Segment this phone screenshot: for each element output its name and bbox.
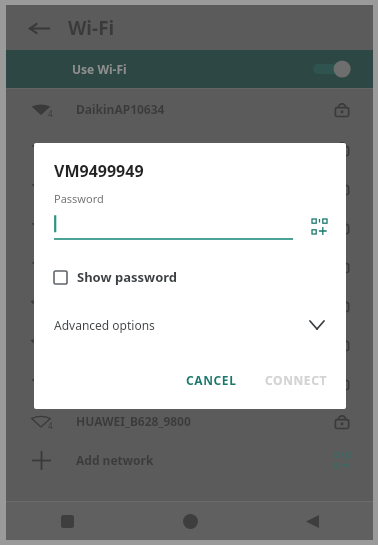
staticText: VM9499949 [54, 160, 144, 182]
staticText: Password [54, 191, 104, 206]
staticText: Use Wi-Fi [72, 61, 127, 77]
button[interactable]: Scan QR code [305, 212, 333, 240]
button[interactable]: 4 [6, 401, 373, 440]
staticText: 4 [48, 108, 53, 119]
staticText: Advanced options [54, 317, 155, 333]
button[interactable]: 4 [6, 89, 373, 128]
button[interactable]: 4 [6, 362, 373, 401]
button[interactable]: 4 [6, 128, 373, 167]
staticText: Show password [77, 268, 178, 286]
button[interactable]: 4 [6, 323, 373, 362]
button[interactable]: Back [251, 502, 373, 540]
button[interactable]: Back [24, 13, 54, 43]
staticText: 4 [48, 420, 53, 431]
button[interactable]: Show password [34, 264, 346, 290]
button[interactable]: Add network [6, 440, 373, 479]
staticText: CANCEL [186, 372, 237, 388]
staticText: CONNECT [265, 372, 328, 388]
staticText: DaikinAP10634 [76, 101, 165, 117]
button[interactable]: CONNECT [255, 365, 338, 395]
button[interactable]: Scan QR code to add network [331, 449, 353, 471]
button[interactable]: Recent apps [6, 502, 129, 540]
button[interactable]: 4 [6, 167, 373, 206]
button[interactable]: 4 [6, 284, 373, 323]
button[interactable]: 4 [6, 245, 373, 284]
button[interactable]: Use Wi-Fi [6, 50, 373, 88]
button[interactable]: Advanced options [34, 311, 346, 339]
button[interactable]: CANCEL [176, 365, 247, 395]
staticText: HUAWEI_B628_9800 [76, 413, 191, 429]
button[interactable]: 4 [6, 206, 373, 245]
button[interactable]: Home [129, 502, 251, 540]
button[interactable] [54, 212, 293, 240]
button[interactable]: Use Wi-Fi toggle [313, 56, 357, 82]
staticText: Wi-Fi [68, 15, 115, 41]
staticText: Add network [76, 452, 154, 468]
